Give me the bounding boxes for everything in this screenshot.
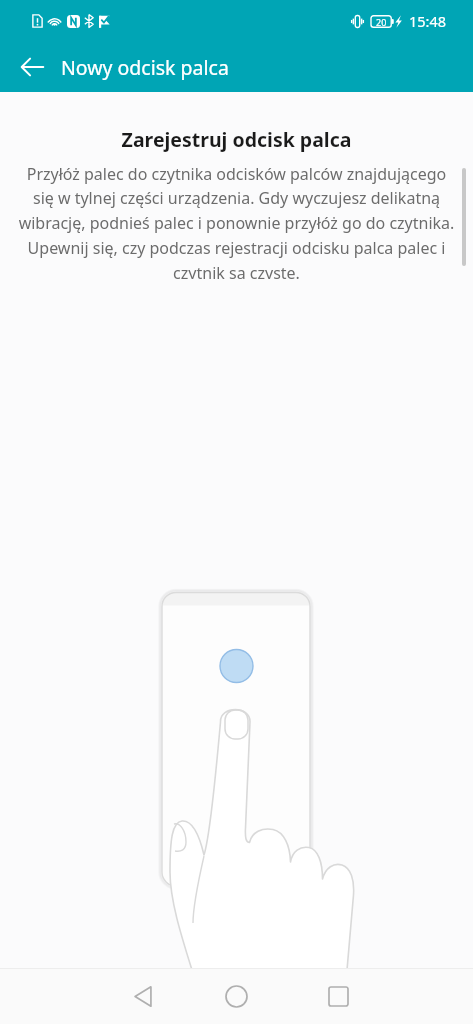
- staticText: 20: [376, 16, 387, 28]
- staticText: 15:48: [409, 11, 447, 31]
- button[interactable]: Recents: [314, 972, 362, 1020]
- button[interactable]: Back: [119, 972, 167, 1020]
- staticText: Nowy odcisk palca: [61, 54, 229, 81]
- button[interactable]: Back: [8, 43, 56, 91]
- staticText: Przyłóż palec do czytnika odcisków palcó…: [16, 163, 457, 279]
- button[interactable]: Home: [212, 972, 260, 1020]
- staticText: Zarejestruj odcisk palca: [0, 126, 473, 153]
